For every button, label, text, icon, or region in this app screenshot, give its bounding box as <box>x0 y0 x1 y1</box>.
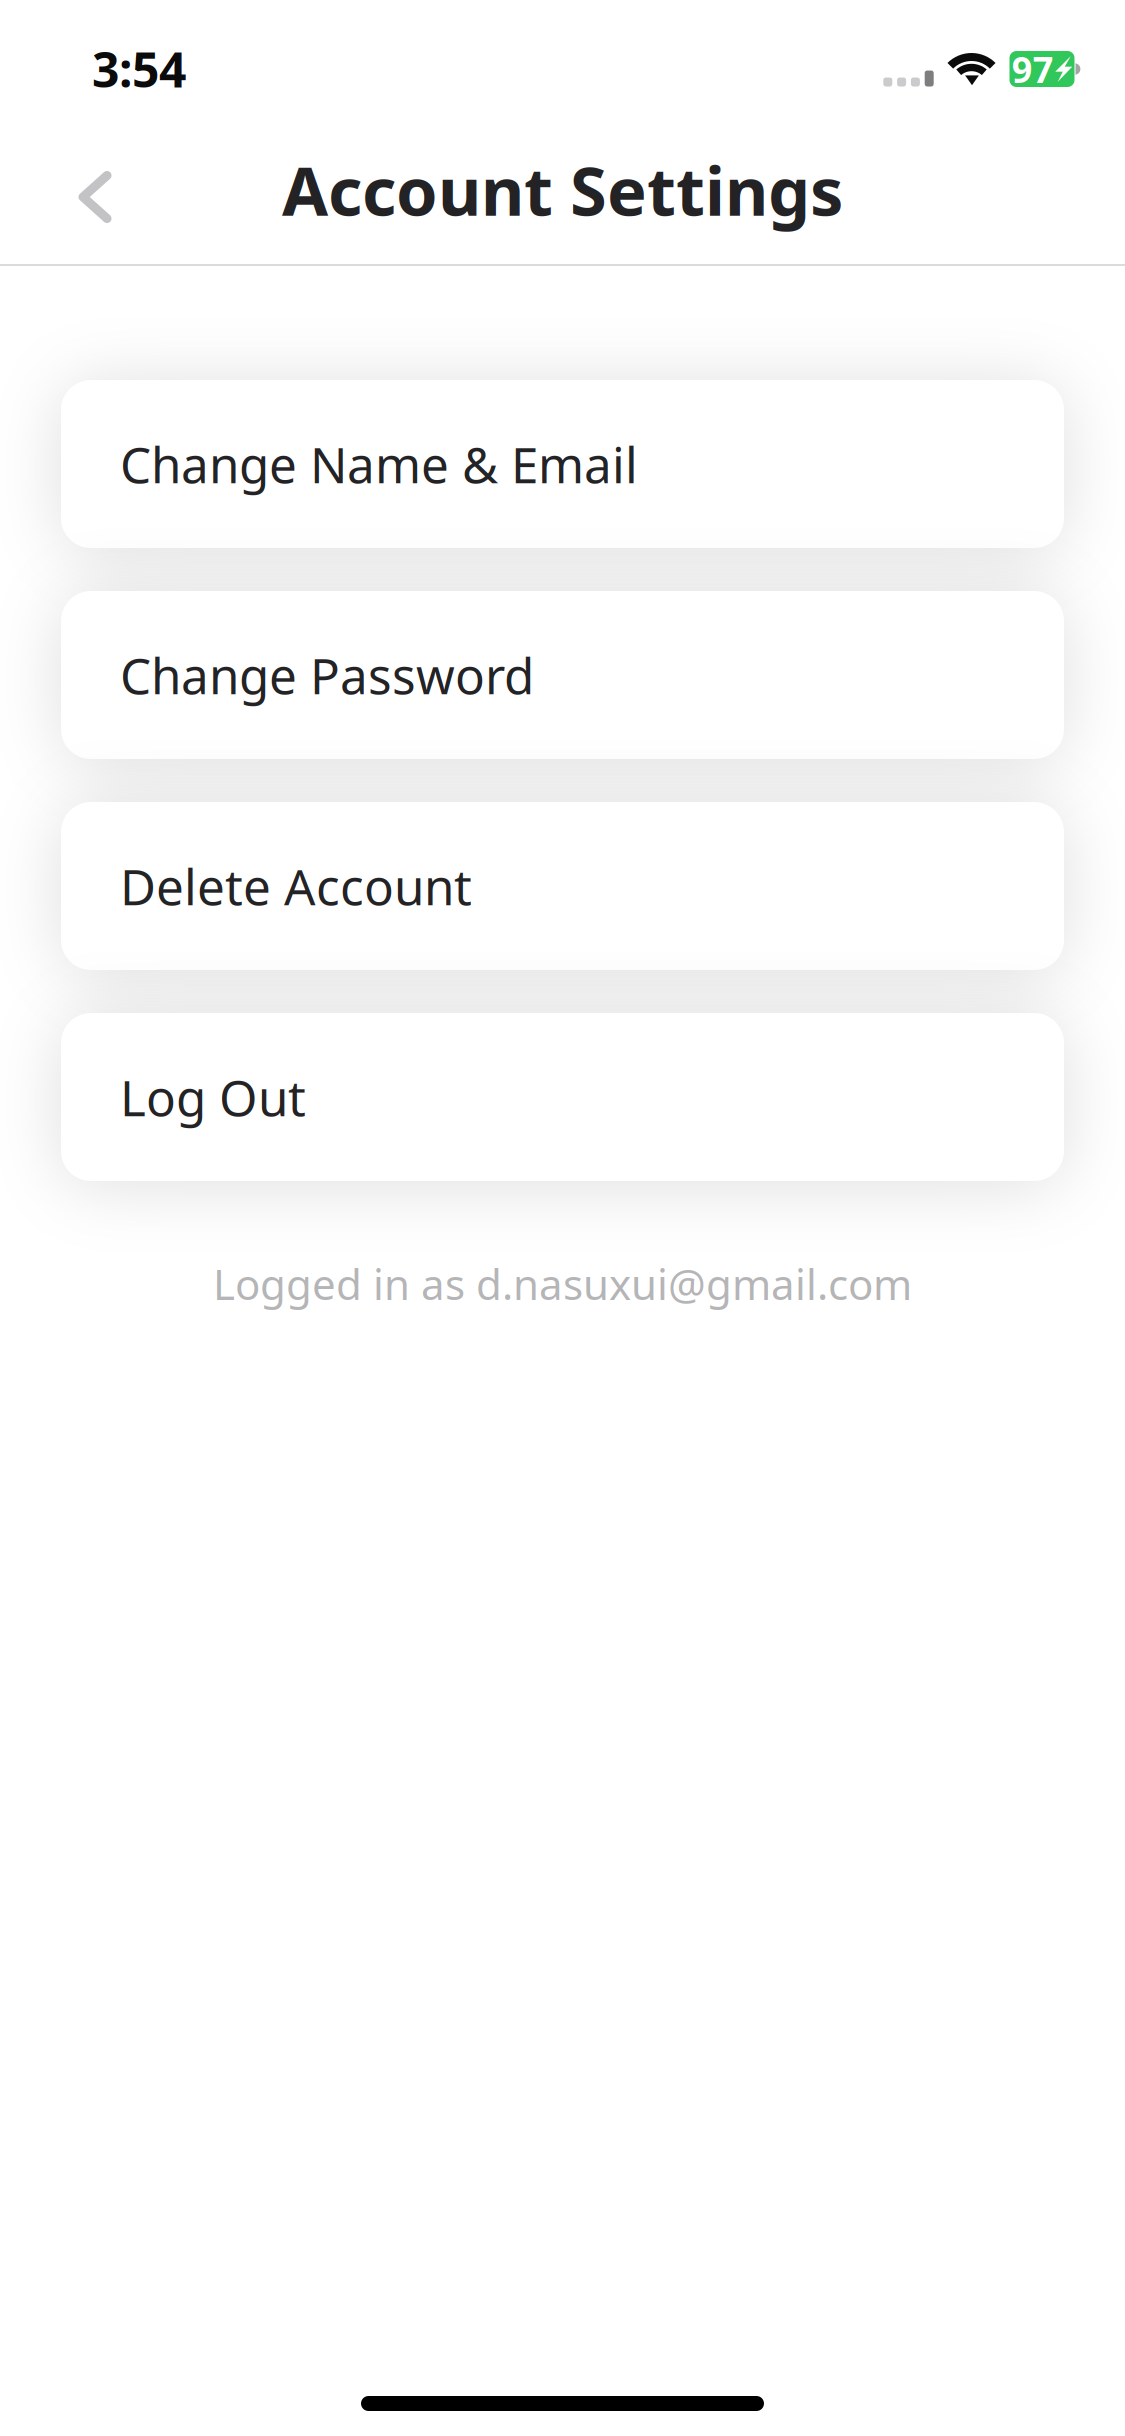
button[interactable]: Change Name & Email <box>61 380 1064 548</box>
staticText: 3:54 <box>92 36 186 102</box>
button[interactable]: Delete Account <box>61 802 1064 970</box>
staticText: Account Settings <box>282 145 843 235</box>
button[interactable]: Log Out <box>61 1013 1064 1181</box>
button[interactable]: Change Password <box>61 591 1064 759</box>
button[interactable]: Back <box>36 138 154 256</box>
staticText: Logged in as d.nasuxui@gmail.com <box>213 1255 912 1312</box>
staticText: 97 <box>1012 44 1054 93</box>
staticText: Change Name & Email <box>120 430 638 498</box>
staticText: Log Out <box>120 1063 306 1131</box>
staticText: Change Password <box>120 641 534 709</box>
staticText: Delete Account <box>120 852 472 920</box>
